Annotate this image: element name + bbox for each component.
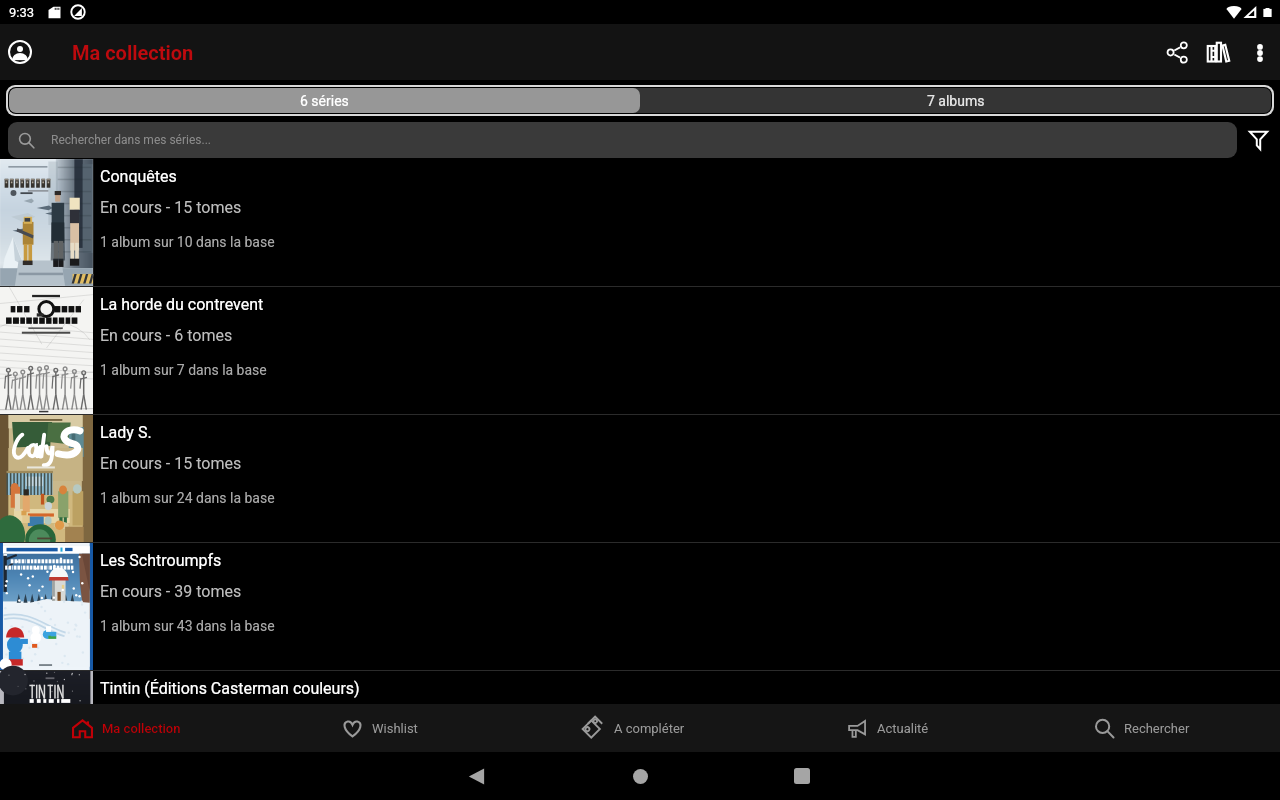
- staticText: Actualité: [877, 721, 929, 736]
- staticText: 1 album sur 24 dans la base: [100, 490, 275, 506]
- staticText: Lady S.: [100, 423, 152, 442]
- button[interactable]: Recents: [778, 752, 826, 800]
- staticText: En cours - 39 tomes: [100, 582, 242, 601]
- staticText: 1 album sur 43 dans la base: [100, 618, 275, 634]
- button[interactable]: Les Schtroumpfs: [0, 543, 1280, 670]
- staticText: Rechercher dans mes séries...: [51, 133, 212, 147]
- button[interactable]: A compléter: [507, 704, 761, 752]
- staticText: 9:33: [9, 5, 35, 20]
- button[interactable]: Tintin (Éditions Casterman couleurs): [0, 671, 1280, 704]
- staticText: 1 album sur 10 dans la base: [100, 234, 275, 250]
- staticText: 7 albums: [927, 93, 985, 109]
- staticText: Les Schtroumpfs: [100, 551, 222, 570]
- staticText: En cours - 15 tomes: [100, 454, 242, 473]
- staticText: Wishlist: [372, 721, 418, 736]
- button[interactable]: Home: [616, 752, 664, 800]
- button[interactable]: Rechercher dans mes séries...: [8, 122, 1237, 158]
- staticText: 6 séries: [300, 93, 349, 109]
- button[interactable]: Lady S.: [0, 415, 1280, 542]
- staticText: Conquêtes: [100, 167, 177, 186]
- button[interactable]: Conquêtes: [0, 159, 1280, 286]
- staticText: En cours - 15 tomes: [100, 198, 242, 217]
- button[interactable]: Ma collection: [0, 704, 253, 752]
- button[interactable]: 6 séries: [9, 88, 640, 113]
- button[interactable]: Filter: [1237, 122, 1279, 158]
- staticText: Ma collection: [72, 41, 194, 64]
- staticText: 1 album sur 7 dans la base: [100, 362, 267, 378]
- staticText: En cours - 6 tomes: [100, 326, 233, 345]
- staticText: Rechercher: [1124, 721, 1190, 736]
- staticText: La horde du contrevent: [100, 295, 264, 314]
- button[interactable]: Back: [452, 752, 500, 800]
- button[interactable]: More options: [1239, 32, 1280, 73]
- button[interactable]: Wishlist: [253, 704, 507, 752]
- staticText: A compléter: [614, 721, 685, 736]
- button[interactable]: Share: [1157, 32, 1198, 73]
- button[interactable]: Actualité: [761, 704, 1015, 752]
- button[interactable]: Rechercher: [1015, 704, 1269, 752]
- staticText: Ma collection: [102, 721, 181, 736]
- button[interactable]: La horde du contrevent: [0, 287, 1280, 414]
- button[interactable]: 7 albums: [640, 88, 1271, 113]
- button[interactable]: Account: [2, 34, 38, 70]
- button[interactable]: Library: [1198, 32, 1239, 73]
- staticText: Tintin (Éditions Casterman couleurs): [100, 679, 360, 698]
